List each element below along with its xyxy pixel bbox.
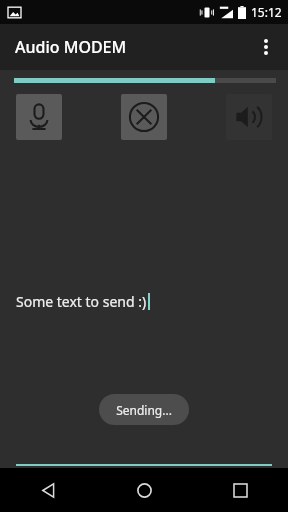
button[interactable]: Recent apps — [192, 468, 288, 512]
button[interactable]: Sending... — [99, 394, 189, 425]
staticText: Some text to send :) — [16, 292, 147, 311]
button[interactable]: Cancel — [121, 94, 167, 140]
staticText: Audio MODEM — [15, 36, 127, 58]
button[interactable]: Back — [0, 468, 96, 512]
staticText: 15:12 — [251, 4, 282, 20]
staticText: Sending... — [116, 402, 172, 418]
button[interactable]: Home — [96, 468, 192, 512]
button[interactable]: More options — [244, 25, 288, 69]
button[interactable]: Some text to send :) — [0, 290, 288, 312]
button[interactable]: Play — [226, 94, 272, 140]
button[interactable]: Record — [16, 94, 62, 140]
